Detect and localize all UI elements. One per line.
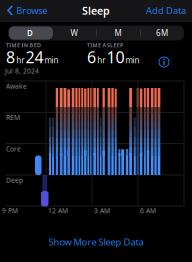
staticText: 9 PM [2,206,18,215]
staticText: hr [16,55,24,65]
staticText: 6 AM [140,206,156,215]
button[interactable]: Back to Browse [3,4,47,17]
button[interactable]: Show More Sleep Data [48,236,143,248]
staticText: Sleep [82,3,110,18]
staticText: 6 [87,46,96,68]
staticText: M [114,28,121,38]
staticText: 8 [6,46,15,68]
staticText: Core [6,144,21,153]
staticText: Add Data [146,4,186,17]
staticText: Deep [6,176,23,185]
staticText: TIME ASLEEP [87,42,123,49]
staticText: min [45,55,59,65]
button[interactable]: About Sleep [158,56,170,68]
button[interactable]: D [8,25,52,40]
staticText: Show More Sleep Data [48,236,143,248]
button[interactable]: M [96,25,140,40]
staticText: min [126,55,140,65]
staticText: REM [6,113,20,122]
button[interactable]: 6M [140,25,184,40]
staticText: 10 [106,46,124,68]
staticText: 24 [25,46,43,68]
staticText: hr [97,55,105,65]
staticText: W [70,28,77,38]
staticText: Browse [16,4,47,17]
staticText: D [27,28,33,38]
staticText: Awake [6,82,27,91]
staticText: 12 AM [48,206,68,215]
button[interactable]: W [52,25,96,40]
staticText: TIME IN BED [6,42,41,49]
staticText: 6M [156,28,168,38]
button[interactable]: Add Data [146,4,186,17]
staticText: 3 AM [94,206,110,215]
staticText: Jul 8, 2024 [5,66,39,75]
